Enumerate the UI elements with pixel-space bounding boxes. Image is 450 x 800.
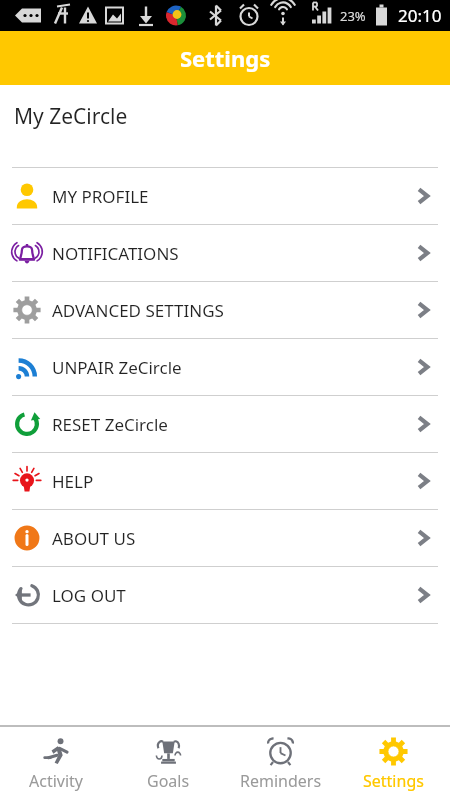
- staticText: 23%: [340, 7, 366, 25]
- staticText: NOTIFICATIONS: [52, 242, 412, 265]
- button[interactable]: Reminders: [224, 727, 337, 800]
- button[interactable]: UNPAIR ZeCircle: [0, 339, 450, 395]
- button[interactable]: LOG OUT: [0, 567, 450, 623]
- staticText: MY PROFILE: [52, 185, 412, 208]
- staticText: LOG OUT: [52, 584, 412, 607]
- button[interactable]: RESET ZeCircle: [0, 396, 450, 452]
- staticText: 20:10: [398, 4, 442, 27]
- staticText: RESET ZeCircle: [52, 413, 412, 436]
- button[interactable]: ADVANCED SETTINGS: [0, 282, 450, 338]
- staticText: ABOUT US: [52, 527, 412, 550]
- button[interactable]: Activity: [0, 727, 112, 800]
- button[interactable]: HELP: [0, 453, 450, 509]
- button[interactable]: Goals: [112, 727, 224, 800]
- button[interactable]: Settings: [337, 727, 450, 800]
- staticText: Goals: [147, 770, 190, 792]
- staticText: UNPAIR ZeCircle: [52, 356, 412, 379]
- staticText: Settings: [363, 770, 424, 792]
- button[interactable]: NOTIFICATIONS: [0, 225, 450, 281]
- staticText: ADVANCED SETTINGS: [52, 299, 412, 322]
- staticText: Activity: [29, 770, 84, 792]
- button[interactable]: ABOUT US: [0, 510, 450, 566]
- button[interactable]: MY PROFILE: [0, 168, 450, 224]
- staticText: Reminders: [240, 770, 322, 792]
- staticText: Settings: [180, 43, 271, 73]
- staticText: My ZeCircle: [14, 102, 128, 131]
- staticText: HELP: [52, 470, 412, 493]
